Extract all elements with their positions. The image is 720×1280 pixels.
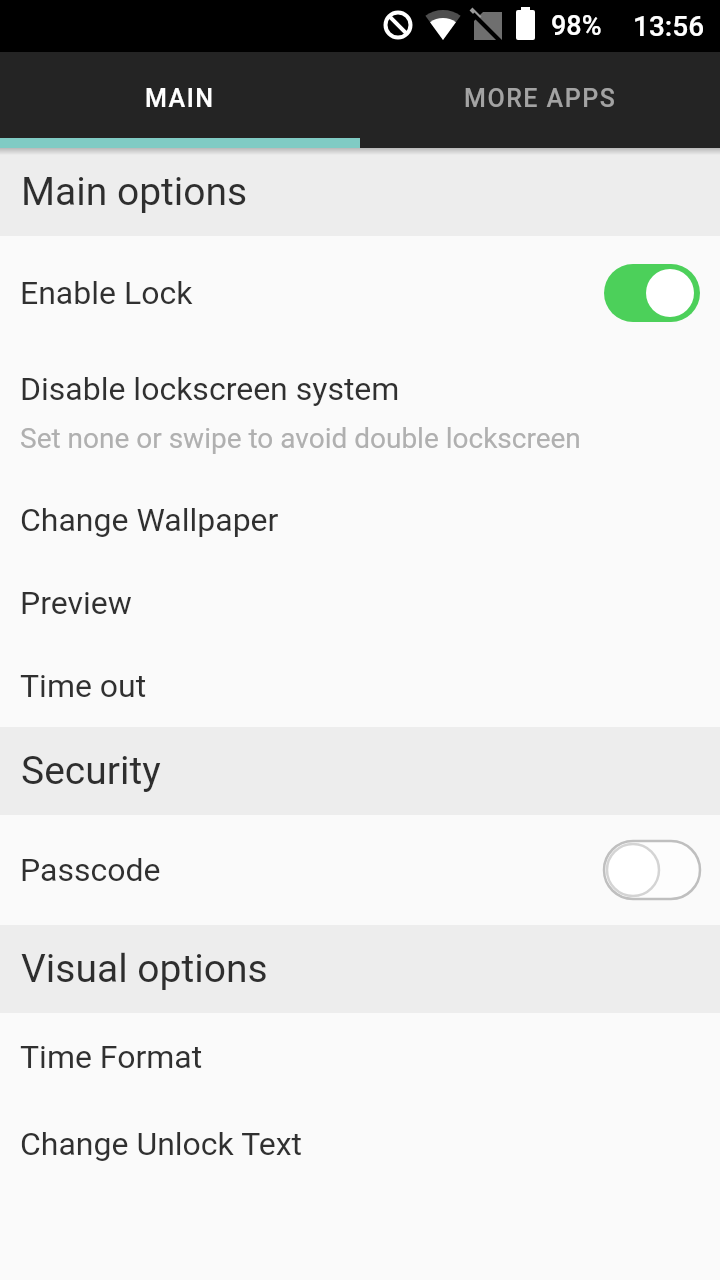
staticText: Enable Lock <box>20 274 193 312</box>
button[interactable]: MAIN <box>0 52 360 144</box>
button[interactable]: Preview <box>0 561 720 644</box>
staticText: Security <box>21 748 161 794</box>
button[interactable]: Time out <box>0 644 720 727</box>
staticText: MORE APPS <box>464 84 617 113</box>
staticText: MAIN <box>145 84 215 113</box>
staticText: Visual options <box>21 946 268 992</box>
staticText: Disable lockscreen system <box>20 370 400 408</box>
button[interactable]: Change Unlock Text <box>0 1101 720 1187</box>
staticText: Preview <box>20 584 132 622</box>
button[interactable]: Disable lockscreen system <box>0 350 720 478</box>
staticText: Time Format <box>20 1038 203 1076</box>
staticText: Passcode <box>20 851 161 889</box>
staticText: Main options <box>21 169 248 215</box>
button[interactable]: Passcode <box>0 815 720 925</box>
staticText: Change Wallpaper <box>20 501 279 539</box>
staticText: Time out <box>20 667 147 705</box>
button[interactable]: MORE APPS <box>360 52 720 144</box>
button[interactable]: Enable Lock <box>0 236 720 350</box>
staticText: 13:56 <box>633 10 705 43</box>
staticText: 98% <box>551 10 602 42</box>
button[interactable]: Change Wallpaper <box>0 478 720 561</box>
staticText: Set none or swipe to avoid double locksc… <box>20 422 581 455</box>
button[interactable]: Time Format <box>0 1013 720 1101</box>
staticText: Change Unlock Text <box>20 1125 302 1163</box>
